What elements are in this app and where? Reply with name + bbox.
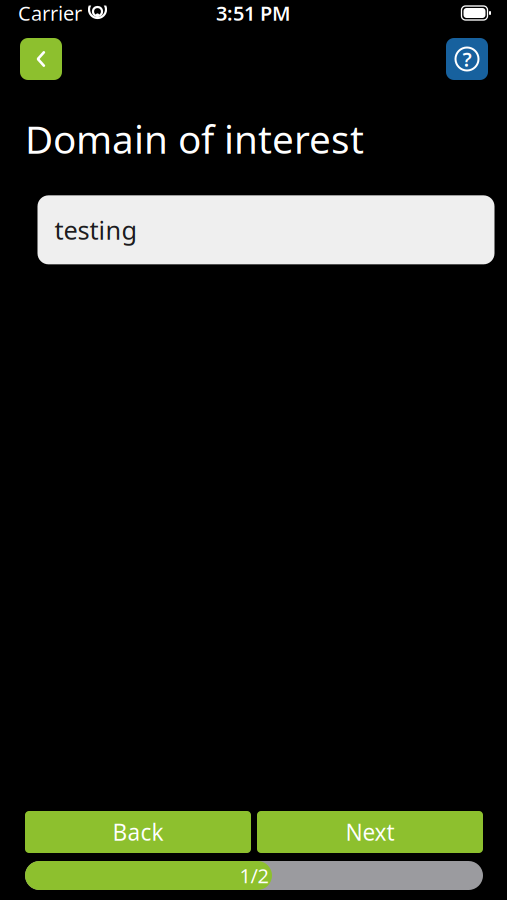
button[interactable]: Back — [20, 38, 62, 80]
staticText: testing — [54, 213, 137, 247]
staticText: Domain of interest — [25, 113, 364, 164]
button[interactable]: Back — [25, 811, 251, 853]
staticText: Next — [345, 817, 394, 847]
staticText: 3:51 PM — [216, 0, 291, 26]
button[interactable]: Next — [257, 811, 483, 853]
staticText: Back — [112, 817, 163, 847]
button[interactable]: Help — [446, 38, 488, 80]
staticText: ? — [462, 46, 471, 72]
staticText: Carrier — [18, 0, 82, 26]
staticText: 1/2 — [239, 862, 268, 889]
